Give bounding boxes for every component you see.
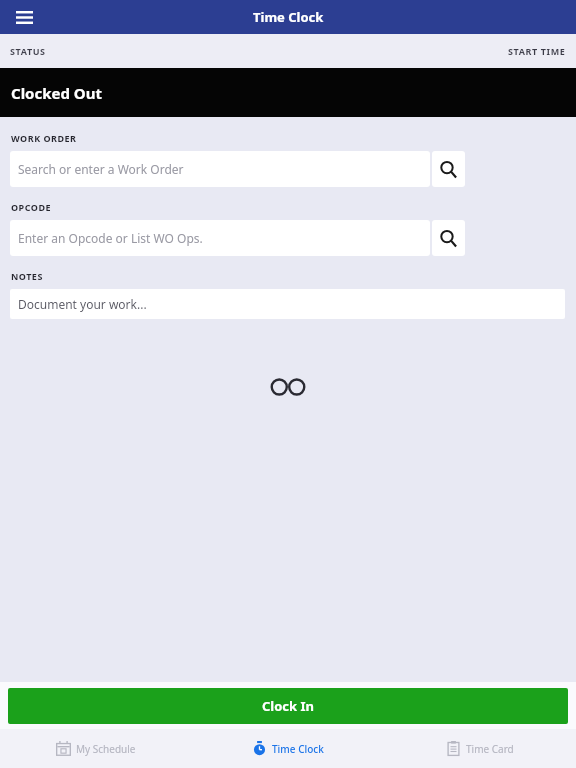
button[interactable]: Search or enter a Work Order [10,151,430,187]
staticText: My Schedule [76,742,136,756]
button[interactable]: Time Card [384,729,576,768]
button[interactable]: Search [432,151,465,187]
staticText: WORK ORDER [11,132,77,144]
button[interactable]: Time Clock [192,729,384,768]
staticText: NOTES [11,270,43,282]
staticText: Document your work... [18,296,147,312]
staticText: Time Card [466,742,514,756]
button[interactable]: Document your work... [10,289,565,319]
button[interactable]: Search [432,220,465,256]
button[interactable]: Enter an Opcode or List WO Ops. [10,220,430,256]
staticText: Enter an Opcode or List WO Ops. [18,230,203,246]
button[interactable]: Clock In [8,688,568,724]
button[interactable]: My Schedule [0,729,192,768]
staticText: START TIME [508,45,566,57]
staticText: Search or enter a Work Order [18,161,184,177]
button[interactable]: Open navigation menu [7,0,41,34]
staticText: Time Clock [272,742,324,756]
staticText: Time Clock [253,8,324,26]
staticText: STATUS [10,45,46,57]
staticText: Clock In [262,697,315,715]
staticText: Clocked Out [11,83,102,103]
staticText: OPCODE [11,201,52,213]
